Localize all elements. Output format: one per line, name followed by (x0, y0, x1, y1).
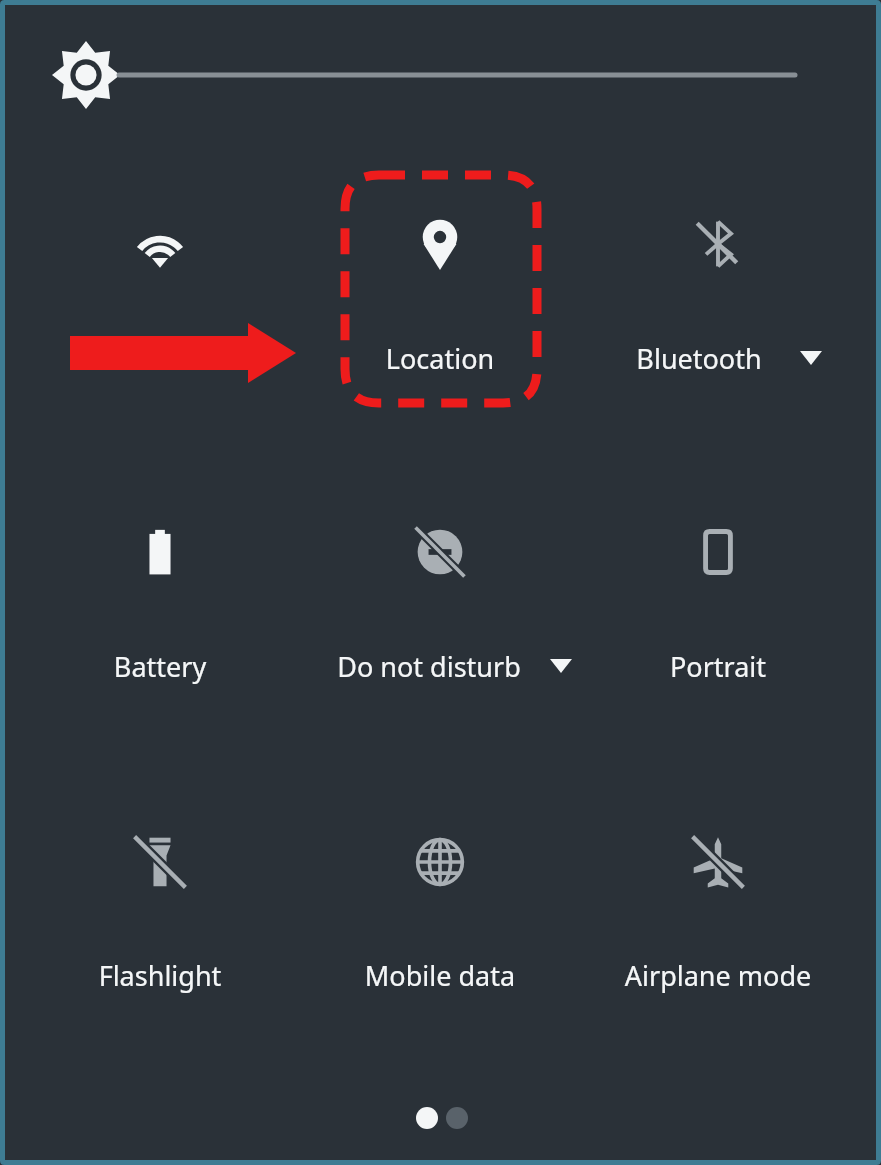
button[interactable]: Location (345, 176, 537, 404)
button[interactable]: Brightness (40, 42, 830, 110)
staticText: Do not disturb (269, 648, 589, 685)
button[interactable]: Battery (60, 484, 260, 712)
button[interactable]: Mobile data (345, 793, 537, 1021)
button[interactable]: Airplane mode (618, 793, 818, 1021)
staticText: Airplane mode (558, 957, 878, 994)
staticText: Battery (0, 648, 320, 685)
staticText: Bluetooth (539, 340, 859, 377)
staticText: Mobile data (280, 957, 600, 994)
button[interactable]: Flashlight (60, 793, 260, 1021)
button[interactable]: Portrait (618, 484, 818, 712)
button[interactable]: Bluetooth (618, 176, 818, 404)
staticText: Flashlight (0, 957, 320, 994)
button[interactable]: Do not disturb (345, 484, 537, 712)
button[interactable]: Wi-Fi (60, 176, 260, 404)
staticText: Portrait (558, 648, 878, 685)
staticText: Location (280, 340, 600, 377)
